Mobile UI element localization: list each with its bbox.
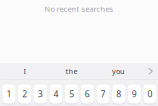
button[interactable]: 1 [2,84,16,104]
staticText: No recent searches [44,4,113,14]
button[interactable]: 2 [18,84,31,104]
button[interactable]: the [48,63,95,79]
staticText: 9 [132,88,137,100]
staticText: 2 [22,88,27,100]
button[interactable]: 4 [49,84,63,104]
button[interactable]: I [1,63,48,79]
staticText: you [112,66,125,76]
staticText: 3 [38,88,43,100]
staticText: 6 [85,88,90,100]
staticText: 7 [100,88,105,100]
button[interactable]: 7 [96,84,110,104]
button[interactable]: 5 [65,84,78,104]
button[interactable]: 9 [128,84,141,104]
button[interactable]: you [95,63,142,79]
button[interactable]: 0 [143,84,156,104]
staticText: 5 [69,88,74,100]
staticText: the [65,66,77,76]
staticText: I [23,66,25,76]
button[interactable]: 6 [81,84,94,104]
button[interactable]: More suggestions [142,63,158,79]
button[interactable]: 8 [112,84,125,104]
button[interactable]: 3 [34,84,47,104]
staticText: 8 [116,88,121,100]
staticText: 0 [147,88,152,100]
staticText: 1 [6,88,11,100]
staticText: 4 [53,88,58,100]
